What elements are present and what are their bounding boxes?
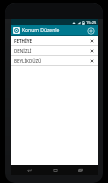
button[interactable]: Sil xyxy=(88,37,95,44)
staticText: DENİZLİ xyxy=(14,48,88,54)
button[interactable]: Konum ekle xyxy=(87,27,95,35)
staticText: Konum Düzenle xyxy=(22,27,87,34)
button[interactable]: Back xyxy=(22,165,36,175)
staticText: 15:25 xyxy=(86,20,97,25)
button[interactable]: Sil xyxy=(88,57,95,64)
button[interactable]: FETHİYE xyxy=(11,36,98,46)
button[interactable]: DENİZLİ xyxy=(11,46,98,56)
button[interactable]: Recents xyxy=(73,165,87,175)
staticText: BEYLİKDÜZÜ xyxy=(14,58,88,64)
staticText: FETHİYE xyxy=(14,38,88,44)
button[interactable]: Sil xyxy=(88,47,95,54)
button[interactable]: Home xyxy=(48,165,62,175)
button[interactable]: BEYLİKDÜZÜ xyxy=(11,56,98,66)
